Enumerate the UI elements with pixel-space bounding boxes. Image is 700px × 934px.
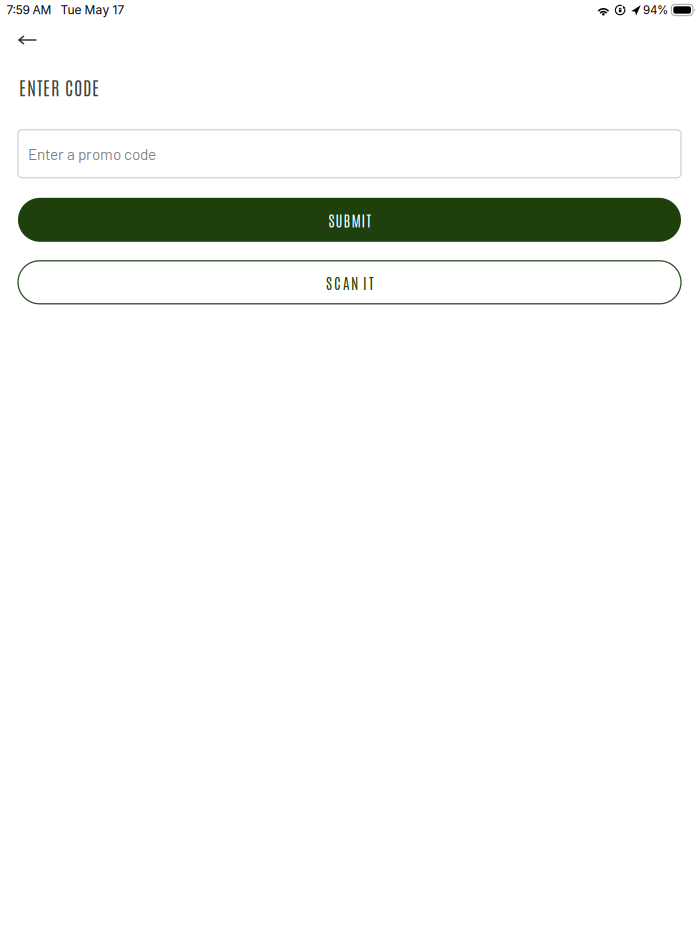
staticText: E N T E R C O D E	[19, 75, 99, 99]
button[interactable]: S C A N I T	[0, 261, 700, 304]
staticText: Tue May 17	[60, 3, 124, 17]
staticText: 7:59 AM	[6, 3, 51, 17]
staticText: 94%	[643, 3, 668, 17]
staticText: Enter a promo code	[28, 145, 156, 163]
button[interactable]: Back	[0, 27, 58, 53]
staticText: S U B M I T	[328, 210, 370, 229]
button[interactable]: S U B M I T	[0, 198, 700, 242]
staticText: S C A N I T	[326, 273, 373, 292]
